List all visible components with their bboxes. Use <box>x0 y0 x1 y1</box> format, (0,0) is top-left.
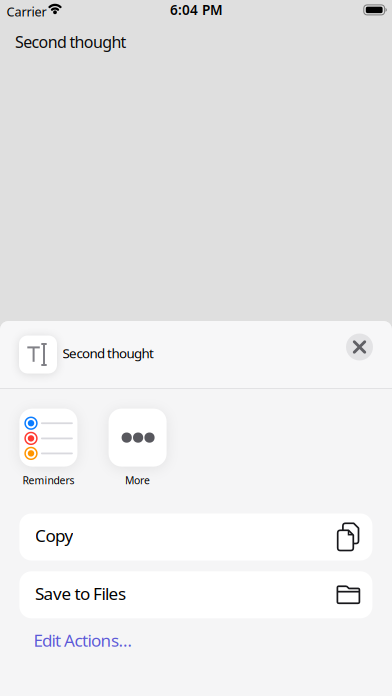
button[interactable]: Copy <box>19 513 372 560</box>
staticText: 6:04 PM <box>170 0 223 19</box>
staticText: More <box>125 473 150 487</box>
staticText: Save to Files <box>35 582 126 605</box>
staticText: Reminders <box>22 473 74 487</box>
staticText: Edit Actions… <box>33 628 132 652</box>
button[interactable]: More <box>109 409 167 487</box>
button[interactable]: Reminders <box>19 409 77 487</box>
button[interactable]: Save to Files <box>19 571 372 618</box>
staticText: Second thought <box>15 31 127 53</box>
button[interactable]: Edit Actions… <box>33 628 132 652</box>
staticText: Second thought <box>62 344 154 362</box>
button[interactable]: Close <box>346 333 373 360</box>
staticText: Carrier <box>6 3 46 20</box>
staticText: Copy <box>35 524 73 547</box>
